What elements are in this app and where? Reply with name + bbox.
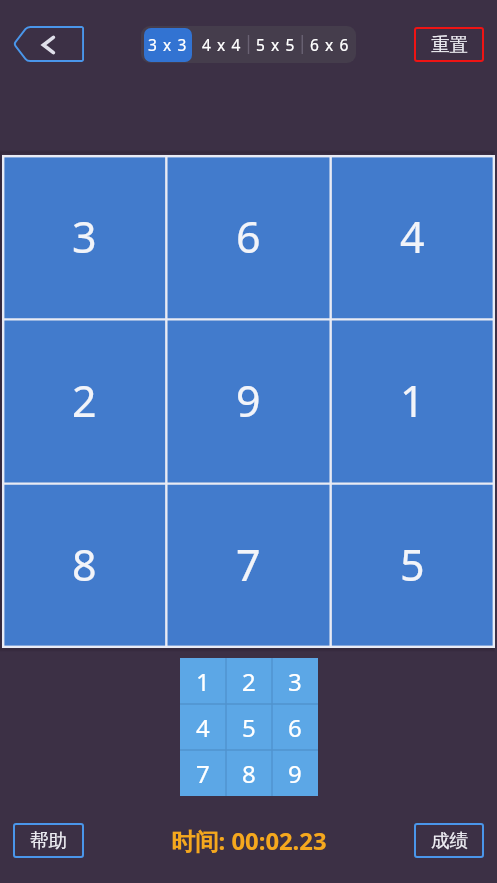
staticText: 4 xyxy=(196,711,210,744)
staticText: 帮助 xyxy=(30,829,67,852)
staticText: 9 xyxy=(288,757,302,790)
button[interactable]: 4 x 4 xyxy=(195,26,249,63)
staticText: 1 xyxy=(196,665,210,698)
staticText: 2 xyxy=(72,371,97,430)
staticText: 4 xyxy=(400,207,425,266)
button[interactable]: 6 xyxy=(166,155,330,319)
button[interactable]: 9 xyxy=(166,319,330,483)
button[interactable]: 7 xyxy=(166,483,330,647)
button[interactable]: 帮助 xyxy=(13,823,84,858)
staticText: 3 xyxy=(72,207,97,266)
staticText: 8 xyxy=(242,757,256,790)
button[interactable]: 3 x 3 xyxy=(141,26,195,63)
button[interactable]: 3 xyxy=(2,155,166,319)
staticText: 8 xyxy=(72,535,97,594)
staticText: 5 xyxy=(242,711,256,744)
staticText: 重置 xyxy=(431,33,468,56)
button[interactable]: 5 xyxy=(330,483,494,647)
staticText: 5 x 5 xyxy=(256,34,296,55)
button[interactable]: 8 xyxy=(2,483,166,647)
button[interactable]: Back xyxy=(13,26,84,62)
staticText: 6 xyxy=(288,711,302,744)
staticText: 3 x 3 xyxy=(148,34,188,55)
staticText: 7 xyxy=(196,757,210,790)
button[interactable]: 成绩 xyxy=(414,823,484,858)
staticText: 3 xyxy=(288,665,302,698)
staticText: 9 xyxy=(236,371,261,430)
button[interactable]: 2 xyxy=(2,319,166,483)
staticText: 7 xyxy=(236,535,261,594)
button[interactable]: 重置 xyxy=(414,27,484,62)
staticText: 6 xyxy=(236,207,261,266)
button[interactable]: 5 x 5 xyxy=(249,26,303,63)
button[interactable]: 4 xyxy=(330,155,494,319)
staticText: 时间: 00:02.23 xyxy=(171,825,327,858)
staticText: 2 xyxy=(242,665,256,698)
button[interactable]: 1 xyxy=(330,319,494,483)
staticText: 成绩 xyxy=(431,829,468,852)
staticText: 4 x 4 xyxy=(202,34,242,55)
button[interactable]: 6 x 6 xyxy=(303,26,356,63)
staticText: 1 xyxy=(400,371,425,430)
staticText: 5 xyxy=(400,535,425,594)
staticText: 6 x 6 xyxy=(310,34,350,55)
